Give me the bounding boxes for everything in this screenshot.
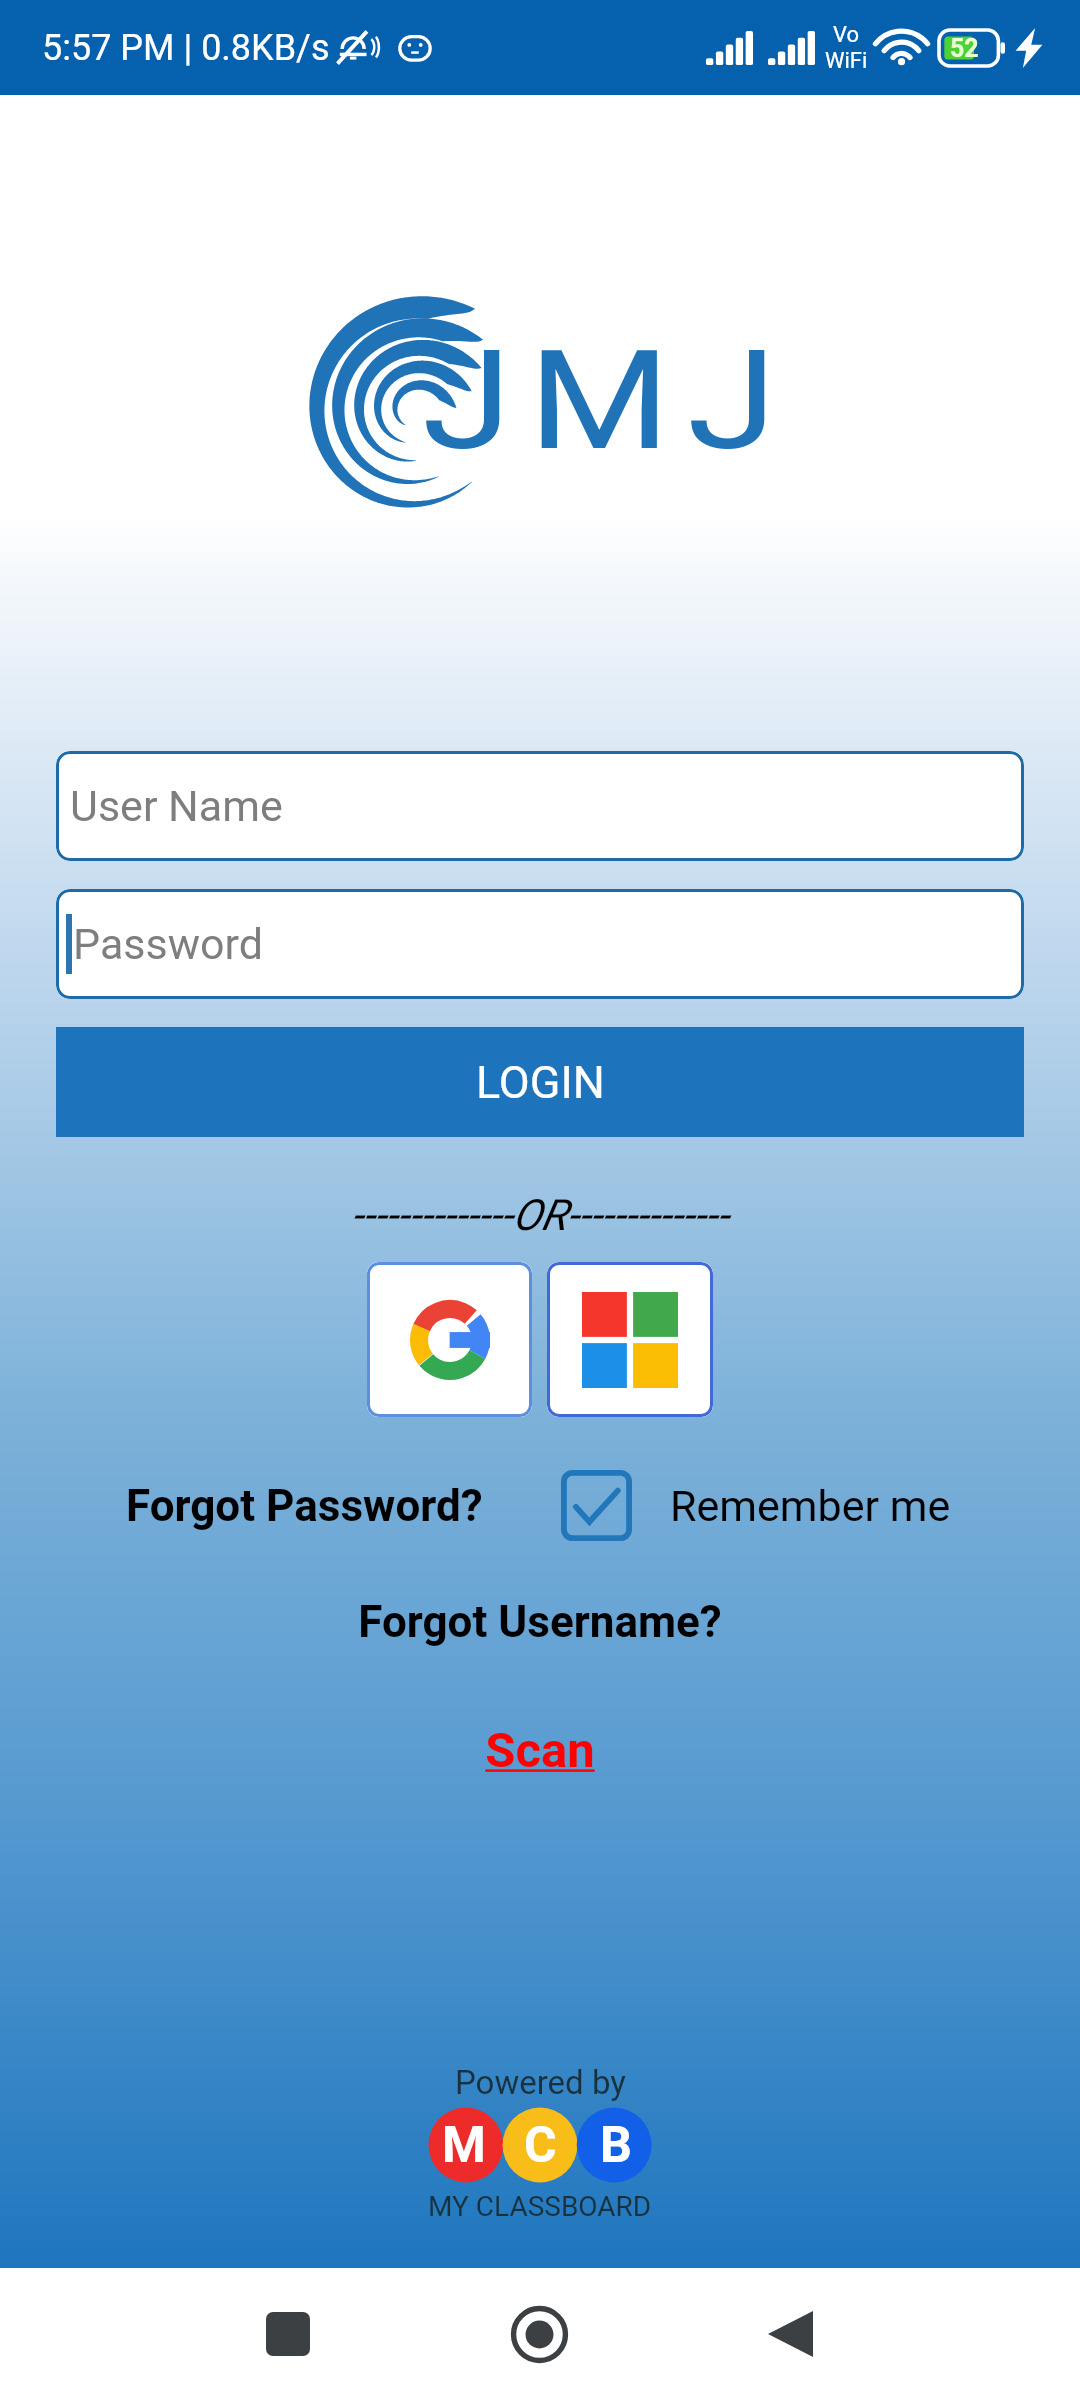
button[interactable]: Forgot Username? [0, 1596, 1080, 1648]
staticText: 5:57 PM | 0.8KB/s [42, 27, 330, 69]
button[interactable]: LOGIN [56, 1027, 1024, 1137]
button[interactable]: Scan [0, 1722, 1080, 1779]
staticText: MY CLASSBOARD [428, 2190, 652, 2223]
staticText: User Name [70, 781, 283, 831]
button[interactable]: Back [730, 2274, 850, 2394]
button[interactable]: Sign in with Microsoft [547, 1262, 713, 1417]
staticText: Powered by [455, 2063, 626, 2102]
button[interactable]: Forgot Password? [126, 1480, 483, 1532]
button[interactable]: Remember me checkbox [561, 1470, 632, 1541]
staticText: WiFi [825, 48, 868, 74]
staticText: Vo [833, 22, 860, 48]
button[interactable]: Recent apps [228, 2274, 348, 2394]
staticText: M [442, 2116, 486, 2175]
staticText: 52 [950, 34, 979, 63]
button[interactable]: Home [479, 2274, 599, 2394]
staticText: Password [73, 919, 263, 969]
button[interactable]: User Name [56, 751, 1024, 861]
button[interactable]: Password [56, 889, 1024, 999]
staticText: LOGIN [476, 1056, 605, 1109]
button[interactable]: Remember me [670, 1481, 951, 1531]
staticText: --------------OR-------------- [351, 1190, 729, 1240]
staticText: JMJ [422, 320, 794, 482]
button[interactable]: Sign in with Google [367, 1262, 532, 1417]
staticText: B [600, 2116, 632, 2175]
staticText: C [524, 2116, 557, 2175]
